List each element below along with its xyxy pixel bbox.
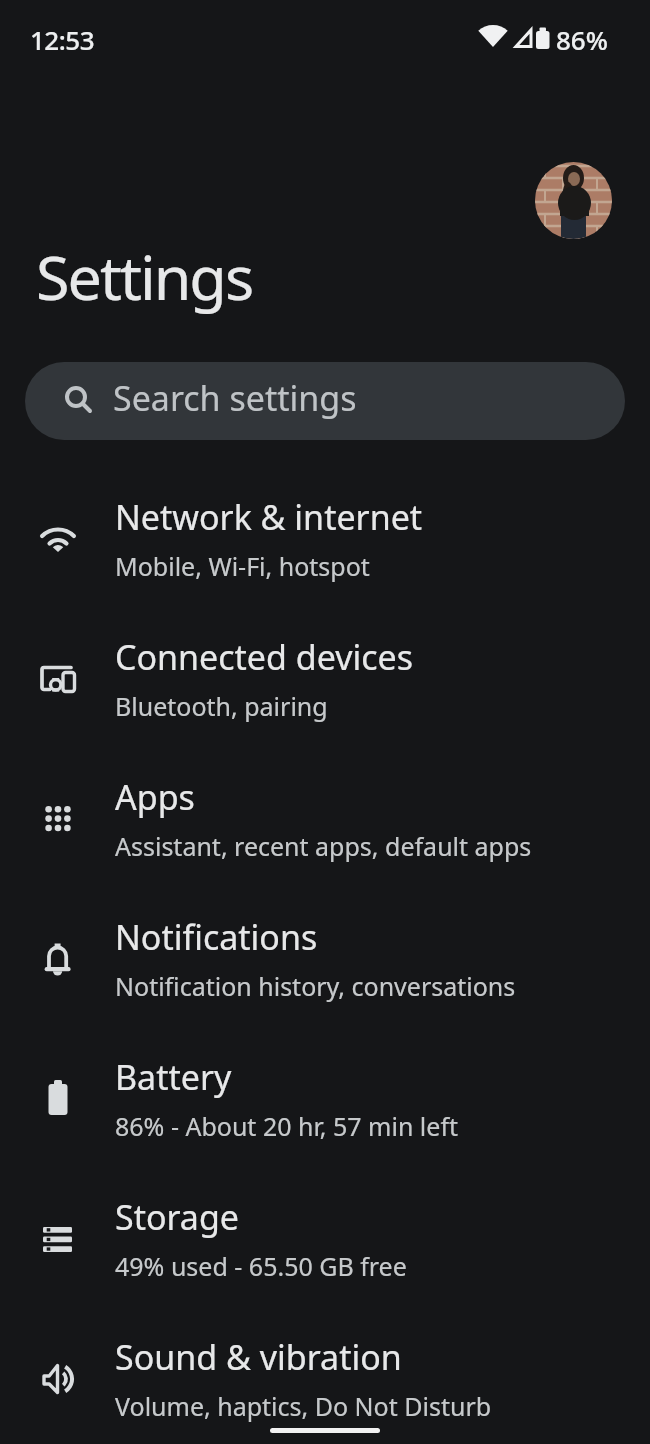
button[interactable] — [535, 162, 612, 239]
staticText: Storage — [115, 1194, 240, 1240]
staticText: Sound & vibration — [115, 1334, 402, 1380]
staticText: Notification history, conversations — [115, 969, 516, 1003]
staticText: Mobile, Wi-Fi, hotspot — [115, 549, 370, 583]
button[interactable]: Storage — [0, 1168, 650, 1308]
staticText: Search settings — [113, 375, 357, 421]
staticText: 12:53 — [30, 22, 95, 57]
staticText: Apps — [115, 774, 195, 820]
staticText: Battery — [115, 1054, 232, 1100]
staticText: Volume, haptics, Do Not Disturb — [115, 1389, 492, 1423]
staticText: Bluetooth, pairing — [115, 689, 328, 723]
button[interactable]: Battery — [0, 1028, 650, 1168]
button[interactable]: Apps — [0, 748, 650, 888]
staticText: Settings — [36, 235, 253, 318]
staticText: 86% — [556, 22, 608, 57]
button[interactable]: Notifications — [0, 888, 650, 1028]
button[interactable]: Sound & vibration — [0, 1308, 650, 1444]
button[interactable]: Connected devices — [0, 608, 650, 748]
staticText: Assistant, recent apps, default apps — [115, 829, 532, 863]
staticText: 49% used - 65.50 GB free — [115, 1249, 407, 1283]
staticText: Network & internet — [115, 494, 423, 540]
button[interactable]: Search settings — [25, 362, 625, 440]
button[interactable]: Network & internet — [0, 468, 650, 608]
staticText: 86% - About 20 hr, 57 min left — [115, 1109, 459, 1143]
staticText: Connected devices — [115, 634, 414, 680]
staticText: Notifications — [115, 914, 318, 960]
